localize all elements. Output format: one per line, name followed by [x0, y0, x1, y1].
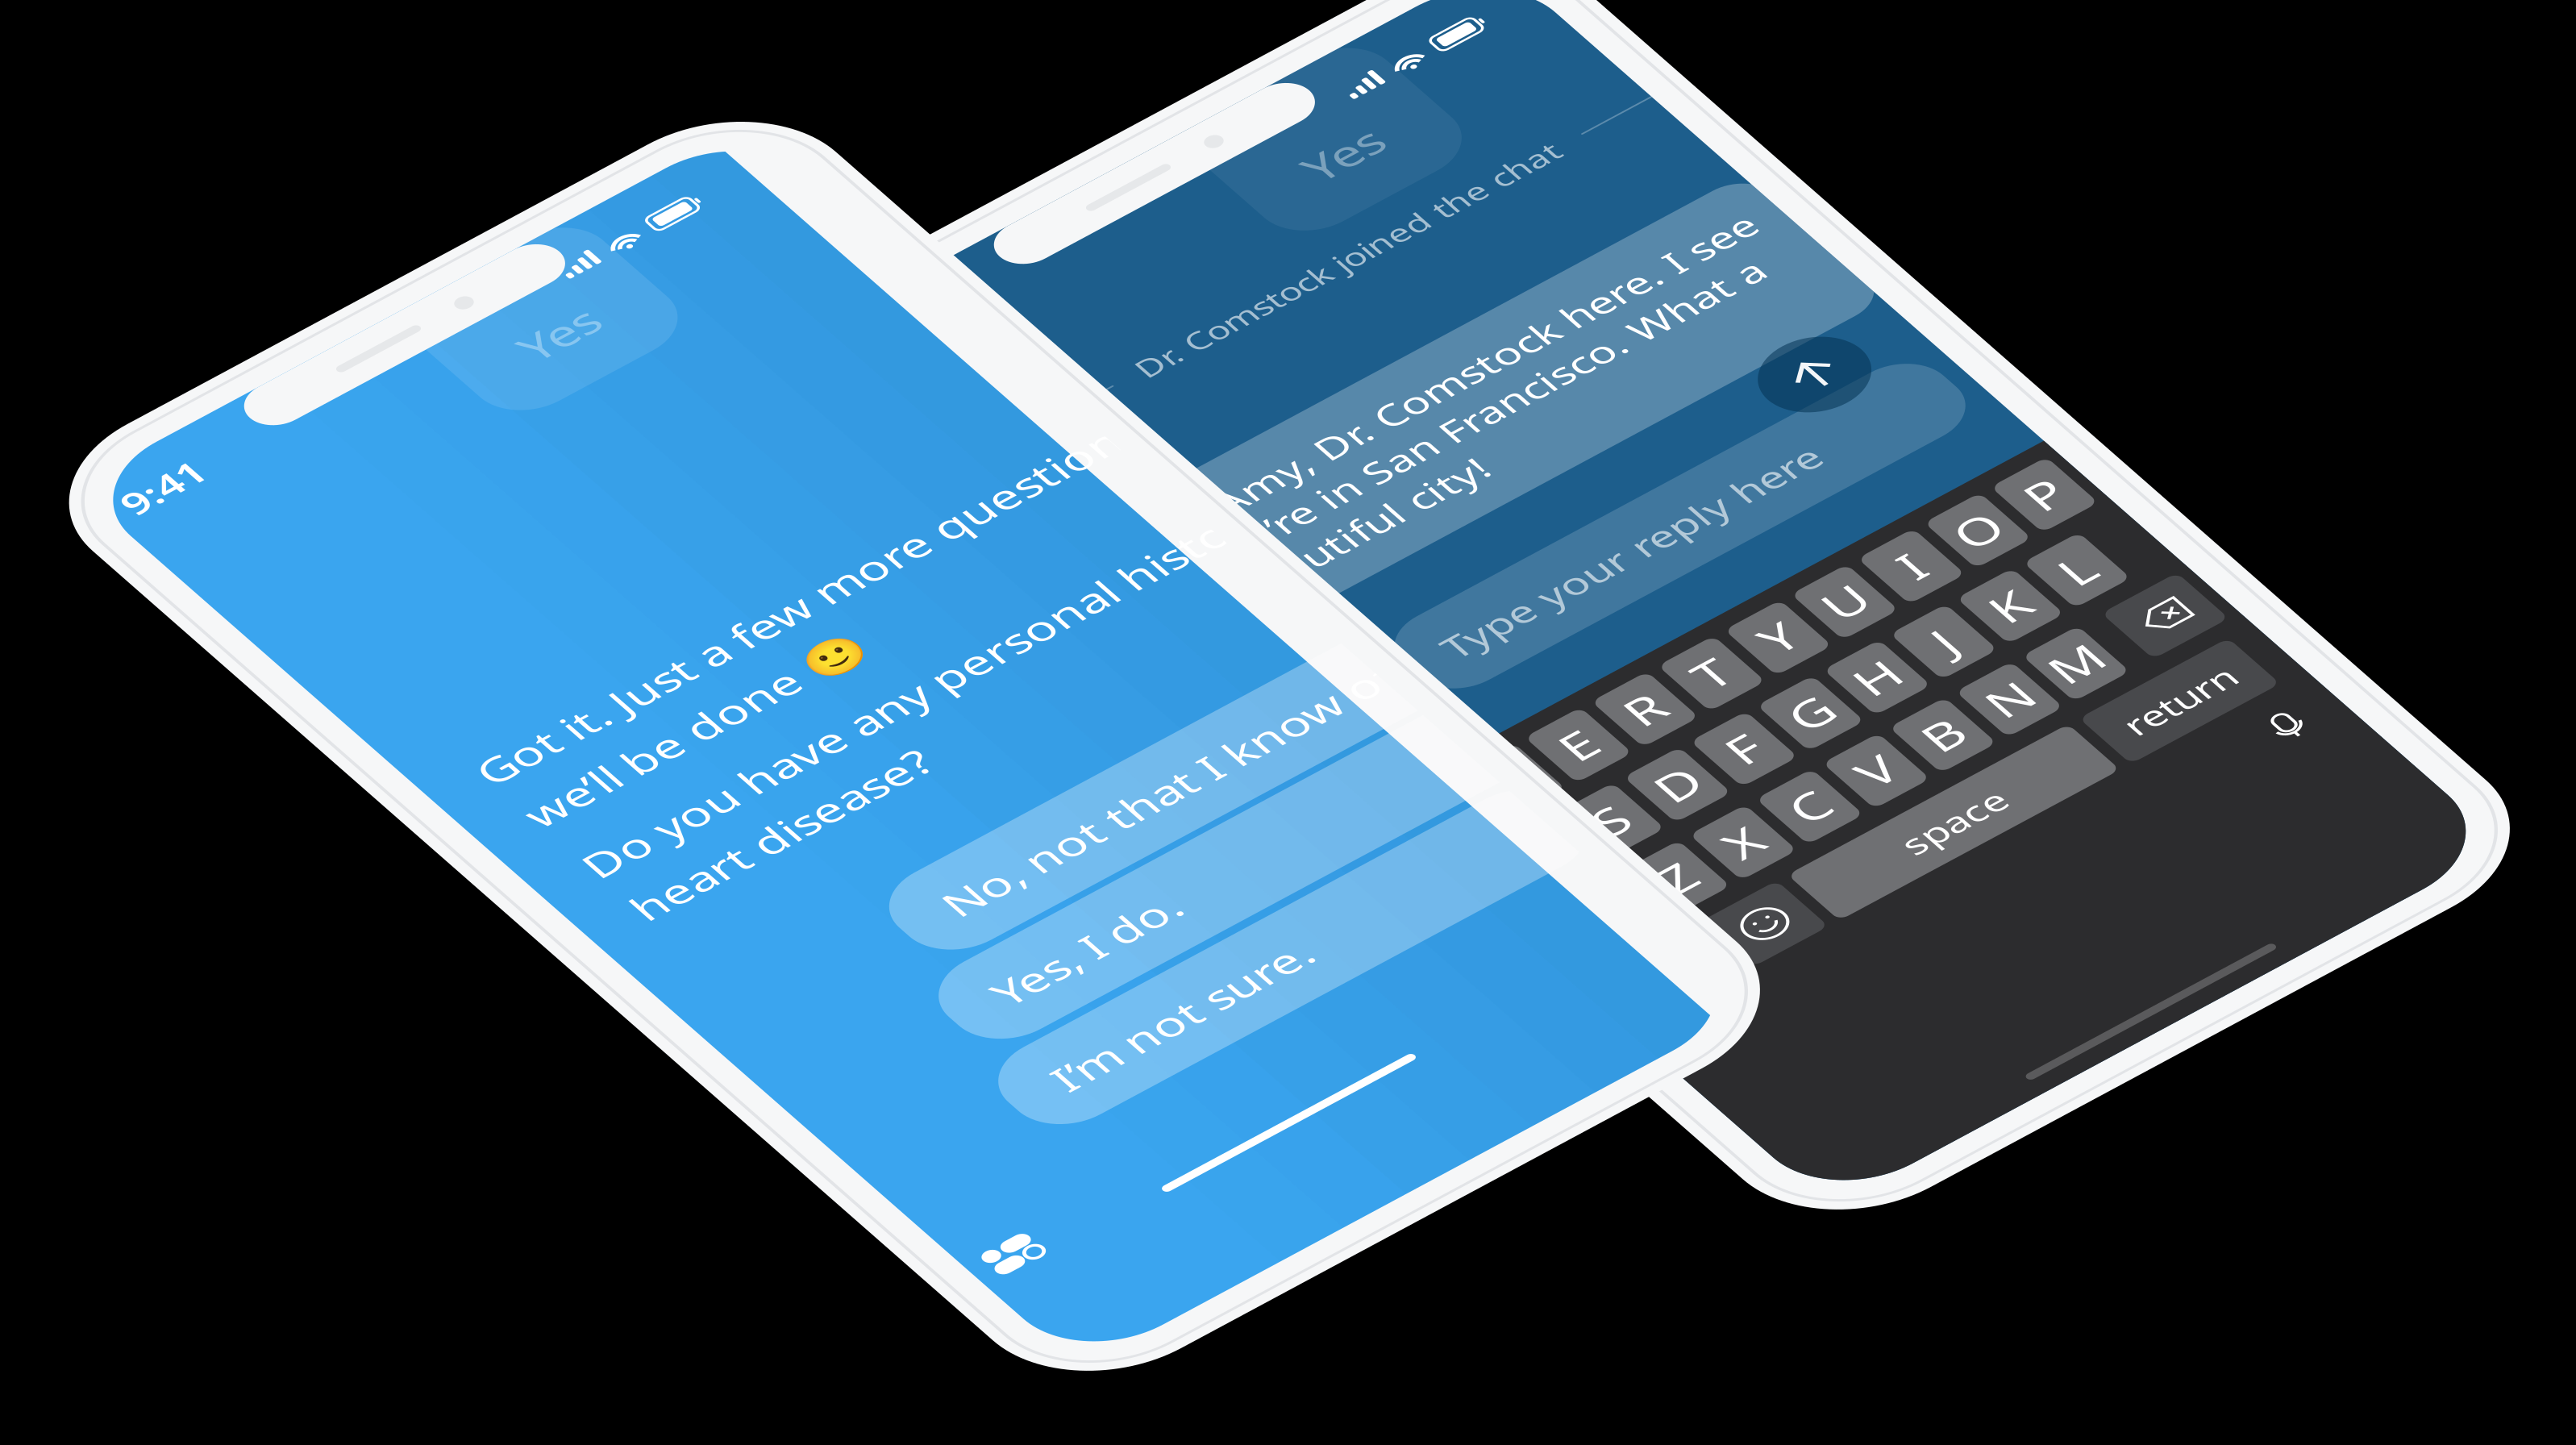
staticText: E: [852, 703, 864, 732]
button[interactable]: Z: [830, 786, 855, 820]
staticText: return: [1015, 835, 1062, 857]
staticText: Yes: [964, 374, 995, 401]
staticText: Got it. Just a few more questions and: [52, 721, 385, 747]
staticText: X: [866, 789, 879, 817]
staticText: R: [881, 703, 895, 732]
button[interactable]: M: [1009, 786, 1034, 820]
staticText: Z: [837, 789, 849, 817]
button[interactable]: Send: [1020, 585, 1062, 627]
button[interactable]: [1045, 786, 1079, 820]
staticText: Hi Amy, Dr. Comstock here. I see you’re …: [810, 508, 1072, 577]
staticText: T: [911, 703, 924, 732]
staticText: G: [925, 746, 940, 775]
button[interactable]: F: [890, 743, 915, 777]
button[interactable]: return: [1005, 829, 1072, 863]
button[interactable]: A: [801, 743, 826, 777]
button[interactable]: R: [875, 701, 900, 735]
button[interactable]: T: [905, 701, 930, 735]
staticText: F: [897, 746, 908, 775]
staticText: A: [806, 746, 820, 775]
button[interactable]: 123: [793, 829, 831, 863]
staticText: Type your reply here: [851, 631, 1017, 653]
staticText: 9:41: [39, 510, 73, 533]
staticText: Do you have any personal history of: [52, 790, 379, 816]
button[interactable]: [786, 786, 820, 820]
button[interactable]: G: [920, 743, 945, 777]
staticText: S: [837, 746, 849, 775]
staticText: M: [1012, 789, 1032, 817]
button[interactable]: E: [845, 701, 870, 735]
button[interactable]: X: [860, 786, 885, 820]
button[interactable]: space: [875, 829, 1001, 863]
staticText: space: [916, 835, 959, 857]
button[interactable]: C: [890, 786, 915, 820]
button[interactable]: S: [830, 743, 855, 777]
staticText: 123: [799, 835, 825, 857]
